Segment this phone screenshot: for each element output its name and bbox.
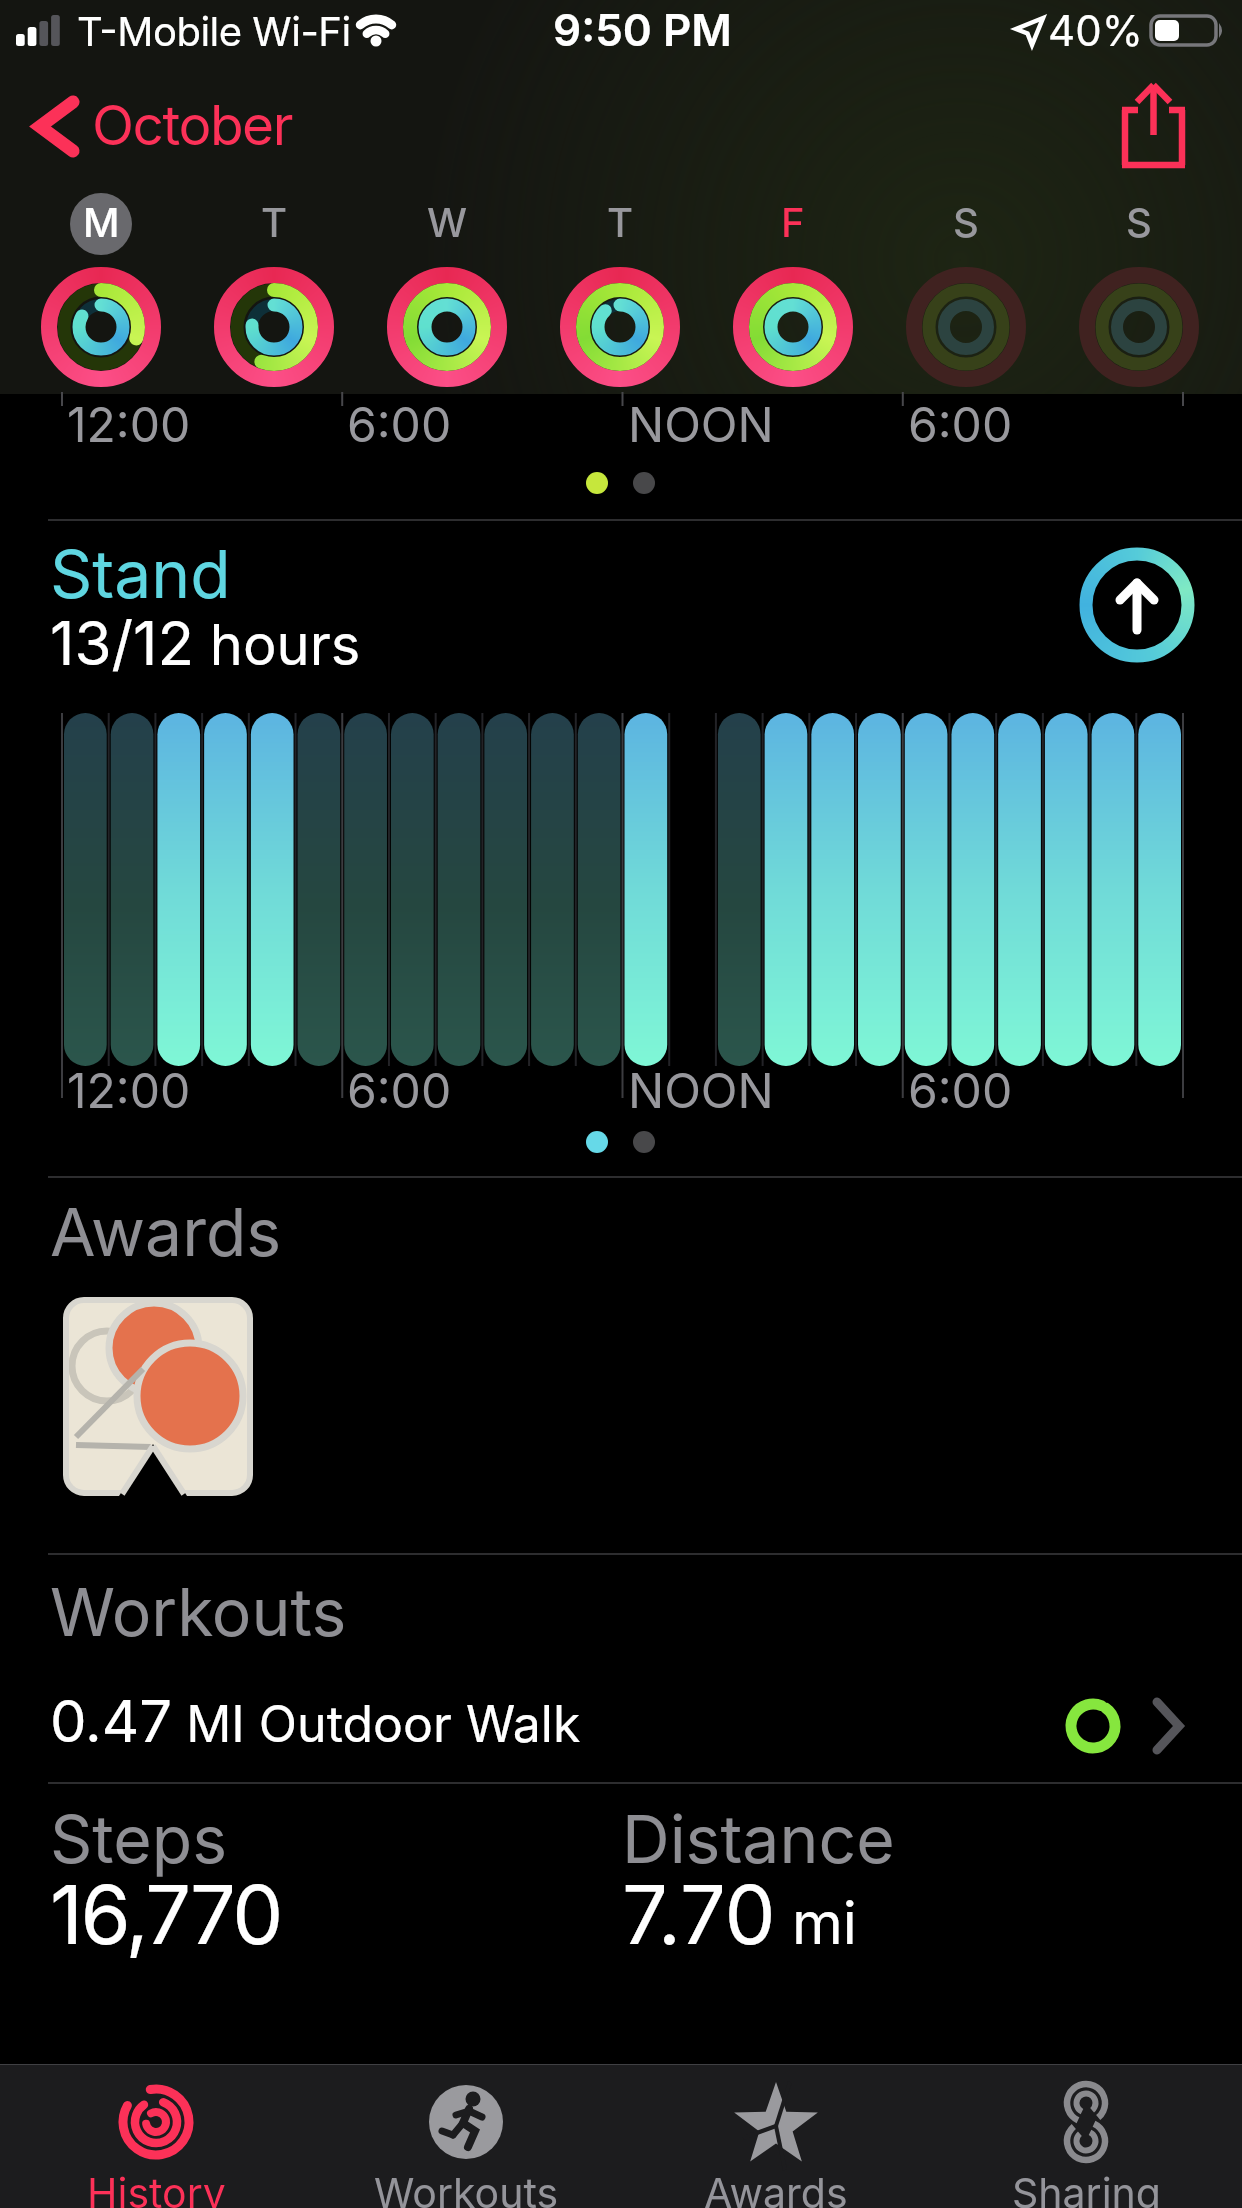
button[interactable] (63, 1297, 253, 1496)
staticText: 16,770 (50, 1866, 281, 1964)
staticText: Sharing (1012, 2168, 1161, 2208)
staticText: S (1126, 198, 1152, 246)
staticText: 7.70 mi (622, 1866, 857, 1964)
button[interactable]: 0.47 MI Outdoor Walk (0, 1672, 1242, 1782)
staticText: Workouts (50, 1572, 347, 1652)
staticText: NOON (628, 1061, 774, 1119)
button[interactable] (1079, 547, 1195, 663)
staticText: Awards (704, 2168, 848, 2208)
button[interactable]: October (20, 70, 350, 170)
staticText: 0.47 MI Outdoor Walk (50, 1686, 581, 1756)
button[interactable] (1105, 70, 1205, 180)
staticText: M (83, 198, 120, 246)
staticText: F (781, 198, 805, 246)
staticText: 13/12 hours (50, 607, 361, 680)
staticText: 12:00 (67, 1061, 191, 1119)
staticText: History (87, 2168, 226, 2208)
button[interactable]: Workouts (346, 2068, 586, 2208)
staticText: T (607, 198, 634, 246)
staticText: Workouts (374, 2168, 559, 2208)
staticText: Awards (50, 1192, 282, 1272)
button[interactable]: Awards (656, 2068, 896, 2208)
staticText: 6:00 (908, 1061, 1013, 1119)
staticText: Distance (622, 1799, 895, 1879)
staticText: T (261, 198, 288, 246)
staticText: Steps (50, 1799, 228, 1879)
staticText: T-Mobile Wi-Fi (77, 7, 351, 55)
staticText: NOON (628, 395, 774, 453)
staticText: 40% (1048, 5, 1143, 56)
staticText: 6:00 (908, 395, 1013, 453)
button[interactable]: Sharing (966, 2068, 1206, 2208)
staticText: Stand (50, 534, 231, 614)
staticText: W (427, 198, 468, 246)
staticText: 6:00 (347, 1061, 452, 1119)
staticText: S (953, 198, 979, 246)
staticText: October (92, 92, 292, 159)
staticText: 9:50 PM (553, 3, 732, 56)
staticText: 6:00 (347, 395, 452, 453)
button[interactable]: History (36, 2068, 276, 2208)
staticText: 12:00 (67, 395, 191, 453)
